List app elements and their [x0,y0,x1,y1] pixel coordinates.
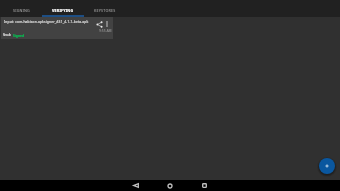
button[interactable]: Add [319,158,335,174]
button[interactable]: Share [94,19,104,29]
button[interactable]: More options [102,19,112,29]
button[interactable]: Input: com.habison.apksigner_#31_4.1.1-b… [1,17,113,39]
staticText: SIGNING [13,8,30,13]
button[interactable]: KEYSTORES [84,0,126,17]
button[interactable]: SIGNING [0,0,42,17]
staticText: VERIFYING [52,8,74,13]
staticText: KEYSTORES [94,8,116,13]
staticText: 9:55 AM [99,28,112,32]
button[interactable]: Recents [187,180,221,191]
button[interactable]: Back [119,180,153,191]
button[interactable]: VERIFYING [42,0,84,17]
staticText: Result: [3,33,12,37]
staticText: Signed [13,33,25,37]
staticText: Input: com.habison.apksigner_#31_4.1.1-b… [4,20,89,24]
button[interactable]: Home [153,180,187,191]
